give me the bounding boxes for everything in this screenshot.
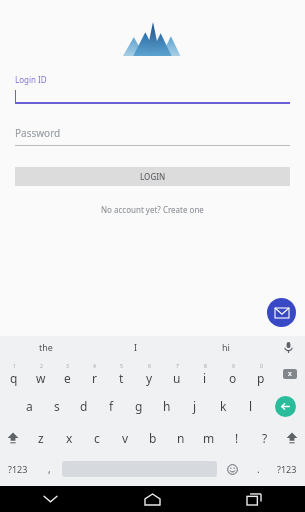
staticText: x	[288, 369, 292, 379]
staticText: ?	[262, 430, 268, 446]
button[interactable]: 8	[191, 358, 219, 390]
button[interactable]: v	[111, 422, 139, 454]
button[interactable]: 7	[163, 358, 191, 390]
button[interactable]: 6	[135, 358, 163, 390]
staticText: t	[119, 370, 124, 386]
button[interactable]: Recent apps	[203, 486, 305, 512]
staticText: Login ID	[15, 74, 47, 85]
button[interactable]: a	[16, 390, 43, 422]
button[interactable]: j	[181, 390, 209, 422]
staticText: c	[94, 430, 100, 446]
staticText: 0	[260, 363, 263, 370]
staticText: .	[257, 462, 260, 476]
staticText: g	[135, 398, 143, 414]
staticText: 3	[66, 363, 69, 370]
staticText: 5	[120, 363, 123, 370]
staticText: No account yet? Create one	[101, 204, 204, 215]
button[interactable]: 9	[219, 358, 247, 390]
button[interactable]: Mail	[267, 298, 296, 327]
staticText: w	[36, 370, 46, 386]
staticText: d	[80, 398, 88, 414]
button[interactable]: 2	[27, 358, 54, 390]
button[interactable]: Backspace	[275, 358, 305, 390]
staticText: x	[66, 430, 73, 446]
staticText: o	[229, 370, 237, 386]
staticText: n	[177, 430, 185, 446]
staticText: 1	[13, 363, 16, 370]
button[interactable]: hi	[181, 336, 271, 358]
staticText: I	[134, 341, 138, 353]
staticText: the	[39, 341, 53, 353]
button[interactable]: 3	[54, 358, 81, 390]
button[interactable]: LOGIN	[15, 167, 290, 186]
button[interactable]: Shift	[279, 422, 305, 454]
staticText: 8	[204, 363, 207, 370]
staticText: r	[92, 370, 97, 386]
staticText: e	[64, 370, 71, 386]
staticText: q	[10, 370, 18, 386]
button[interactable]: Login ID	[15, 74, 290, 104]
staticText: b	[149, 430, 157, 446]
staticText: !	[235, 430, 239, 446]
staticText: 6	[148, 363, 151, 370]
staticText: z	[38, 430, 44, 446]
button[interactable]: k	[209, 390, 237, 422]
staticText: i	[203, 370, 207, 386]
staticText: h	[163, 398, 171, 414]
button[interactable]: m	[195, 422, 223, 454]
staticText: hi	[222, 341, 230, 353]
button[interactable]: d	[70, 390, 97, 422]
button[interactable]: Hide keyboard	[0, 486, 101, 512]
button[interactable]: 1	[0, 358, 27, 390]
button[interactable]: h	[153, 390, 181, 422]
button[interactable]: the	[0, 336, 91, 358]
button[interactable]: I	[91, 336, 181, 358]
button[interactable]: ?123	[269, 454, 305, 484]
staticText: a	[26, 398, 33, 414]
button[interactable]: l	[237, 390, 265, 422]
staticText: u	[173, 370, 181, 386]
staticText: ?123	[277, 463, 297, 475]
button[interactable]: ,	[36, 454, 62, 484]
staticText: v	[122, 430, 129, 446]
staticText: 4	[93, 363, 96, 370]
button[interactable]: ?123	[0, 454, 36, 484]
button[interactable]: .	[247, 454, 269, 484]
staticText: p	[257, 370, 265, 386]
button[interactable]: c	[83, 422, 111, 454]
staticText: m	[203, 430, 215, 446]
staticText: 7	[176, 363, 179, 370]
button[interactable]: Voice input	[271, 336, 305, 358]
button[interactable]: n	[167, 422, 195, 454]
button[interactable]: s	[43, 390, 70, 422]
staticText: Password	[15, 126, 61, 140]
button[interactable]: Home	[101, 486, 203, 512]
staticText: ?123	[8, 463, 28, 475]
button[interactable]: f	[97, 390, 125, 422]
button[interactable]: 4	[81, 358, 108, 390]
staticText: ,	[48, 462, 51, 476]
button[interactable]: b	[139, 422, 167, 454]
staticText: f	[109, 398, 114, 414]
staticText: 2	[40, 363, 43, 370]
staticText: j	[193, 398, 197, 414]
button[interactable]: z	[26, 422, 55, 454]
button[interactable]: Shift	[0, 422, 26, 454]
staticText: y	[146, 370, 153, 386]
button[interactable]: 0	[247, 358, 275, 390]
staticText: 9	[232, 363, 235, 370]
button[interactable]: Enter	[265, 390, 305, 422]
button[interactable]: Emoji	[217, 454, 247, 484]
staticText: k	[220, 398, 227, 414]
button[interactable]: x	[55, 422, 83, 454]
button[interactable]: No account yet? Create one	[0, 204, 305, 215]
button[interactable]: g	[125, 390, 153, 422]
button[interactable]: Password	[15, 126, 290, 146]
staticText: s	[54, 398, 60, 414]
button[interactable]: ?	[251, 422, 279, 454]
button[interactable]: !	[223, 422, 251, 454]
staticText: LOGIN	[140, 171, 166, 182]
button[interactable]: 5	[108, 358, 135, 390]
staticText: l	[249, 398, 253, 414]
